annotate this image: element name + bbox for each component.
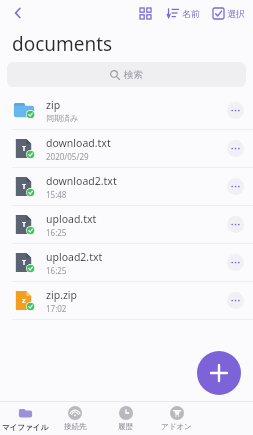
staticText: Z bbox=[22, 297, 26, 305]
button[interactable]: More options bbox=[227, 140, 244, 157]
button[interactable]: T bbox=[0, 206, 253, 244]
staticText: upload2.txt bbox=[46, 250, 103, 264]
staticText: 検索 bbox=[124, 69, 143, 81]
staticText: 履歴 bbox=[118, 422, 133, 431]
staticText: マイファイル bbox=[2, 423, 49, 432]
button[interactable]: アドオン bbox=[151, 402, 202, 435]
button[interactable]: T bbox=[0, 130, 253, 168]
staticText: upload.txt bbox=[46, 212, 97, 226]
button[interactable]: More options bbox=[227, 178, 244, 195]
staticText: 15:48 bbox=[46, 189, 67, 200]
staticText: T bbox=[22, 258, 27, 268]
button[interactable]: zip bbox=[0, 92, 253, 130]
staticText: T bbox=[22, 144, 27, 154]
button[interactable]: マイファイル bbox=[0, 402, 50, 435]
staticText: 17:02 bbox=[46, 303, 67, 314]
staticText: 選択 bbox=[227, 8, 245, 19]
button[interactable]: More options bbox=[227, 254, 244, 271]
button[interactable]: Z bbox=[0, 282, 253, 320]
button[interactable]: More options bbox=[227, 292, 244, 309]
staticText: download2.txt bbox=[46, 174, 117, 188]
staticText: 16:25 bbox=[46, 265, 67, 276]
button[interactable]: 選択 bbox=[212, 8, 246, 19]
staticText: 接続先 bbox=[64, 422, 87, 431]
button[interactable]: 検索 bbox=[7, 62, 246, 87]
staticText: T bbox=[22, 220, 27, 230]
staticText: download.txt bbox=[46, 136, 111, 150]
staticText: 16:25 bbox=[46, 227, 67, 238]
staticText: zip.zip bbox=[46, 288, 78, 302]
button[interactable]: 履歴 bbox=[100, 402, 151, 435]
button[interactable]: More options bbox=[227, 216, 244, 233]
button[interactable]: Add bbox=[197, 351, 241, 395]
button[interactable]: T bbox=[0, 244, 253, 282]
staticText: アドオン bbox=[161, 422, 192, 431]
staticText: documents bbox=[12, 31, 113, 57]
staticText: zip bbox=[46, 98, 61, 112]
button[interactable]: 接続先 bbox=[50, 402, 100, 435]
button[interactable]: More options bbox=[227, 102, 244, 119]
button[interactable]: Grid view bbox=[134, 2, 156, 24]
staticText: 2020/05/29 bbox=[46, 151, 89, 162]
staticText: 名前 bbox=[182, 8, 200, 19]
staticText: 同期済み bbox=[46, 113, 79, 123]
button[interactable]: 名前 bbox=[166, 7, 201, 19]
button[interactable]: T bbox=[0, 168, 253, 206]
button[interactable]: Back bbox=[6, 1, 30, 25]
staticText: T bbox=[22, 182, 27, 192]
